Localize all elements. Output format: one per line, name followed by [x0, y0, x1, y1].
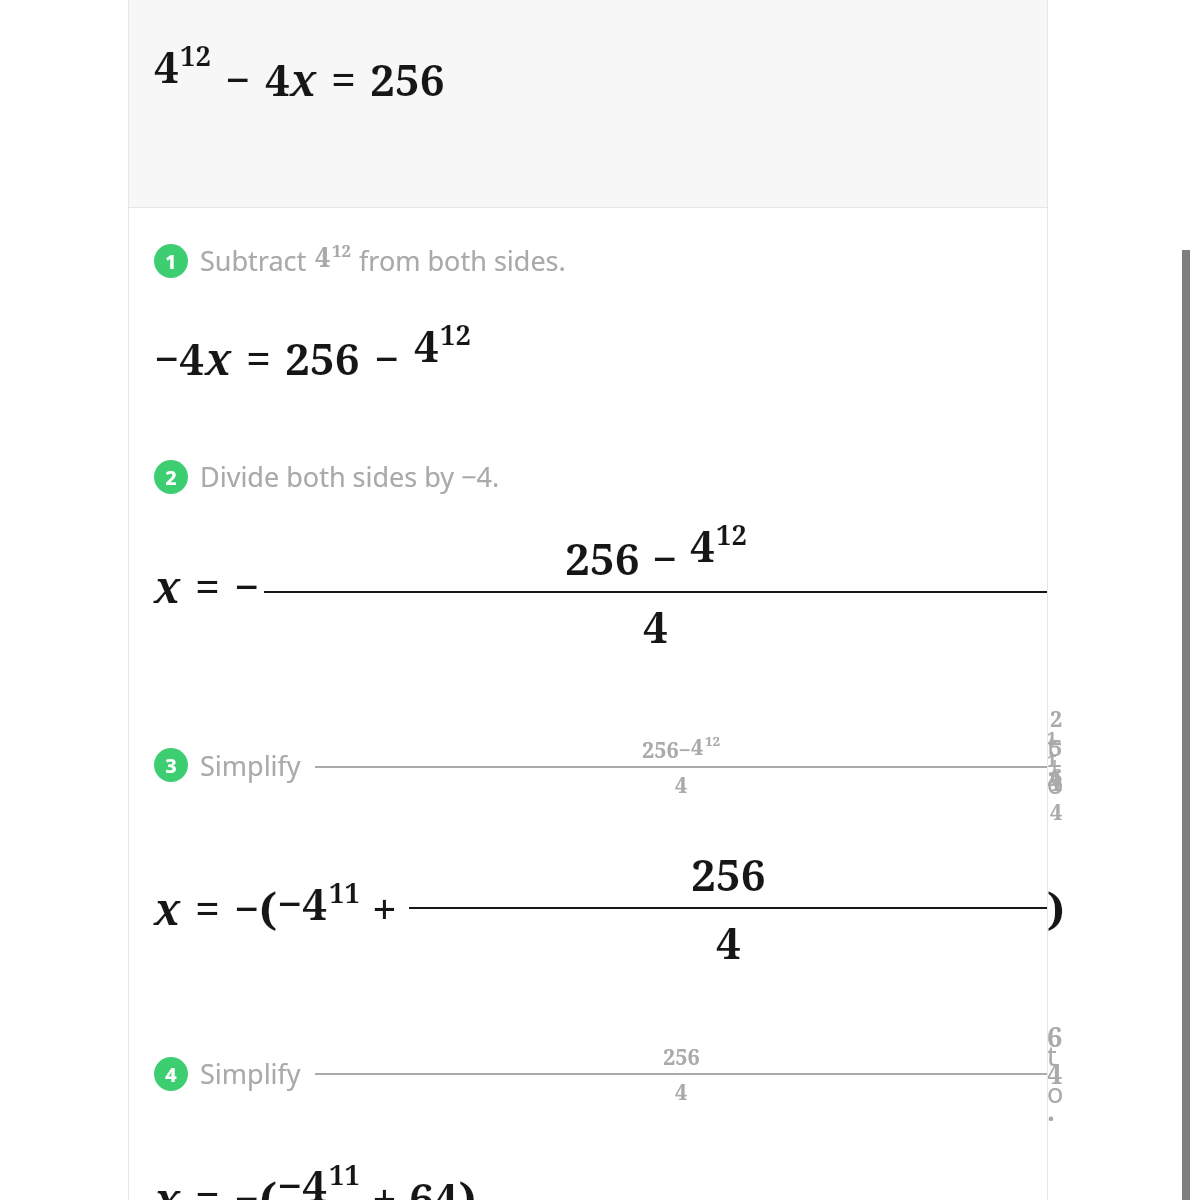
- staticText: x: [205, 328, 232, 388]
- staticText: −: [374, 328, 400, 388]
- staticText: +: [372, 1168, 397, 1200]
- staticText: Simplify: [200, 747, 301, 784]
- staticText: 4: [414, 315, 439, 375]
- staticText: 4: [265, 49, 290, 109]
- staticText: −(: [234, 878, 277, 938]
- staticText: 2: [165, 464, 177, 491]
- button[interactable]: 4: [128, 1018, 1047, 1129]
- staticText: −(: [234, 1168, 277, 1200]
- staticText: 256: [691, 844, 766, 904]
- staticText: −: [234, 556, 260, 616]
- staticText: −: [225, 49, 251, 109]
- staticText: x: [154, 878, 181, 938]
- staticText: 4: [675, 770, 688, 799]
- staticText: −: [652, 528, 678, 588]
- staticText: from both sides.: [359, 242, 566, 279]
- staticText: 11: [329, 1156, 360, 1193]
- staticText: 12: [180, 37, 211, 74]
- staticText: =: [331, 49, 356, 109]
- staticText: x: [154, 556, 181, 616]
- staticText: 4: [643, 596, 668, 656]
- staticText: =: [195, 878, 220, 938]
- staticText: 4: [691, 732, 704, 761]
- button[interactable]: 3: [128, 704, 1047, 826]
- staticText: Divide both sides by −4.: [200, 458, 500, 495]
- staticText: 256: [285, 328, 360, 388]
- staticText: 3: [165, 752, 177, 779]
- button[interactable]: 4: [128, 0, 1047, 207]
- staticText: −4: [277, 1155, 328, 1200]
- staticText: 12: [440, 316, 471, 353]
- staticText: 4: [690, 515, 715, 575]
- staticText: 11: [329, 874, 360, 911]
- staticText: 256: [565, 528, 640, 588]
- staticText: −4: [277, 873, 328, 933]
- staticText: 4: [154, 36, 179, 96]
- staticText: 4: [315, 238, 331, 275]
- staticText: Simplify: [200, 1055, 301, 1092]
- staticText: 4: [675, 1077, 688, 1106]
- staticText: Subtract: [200, 242, 307, 279]
- staticText: 12: [716, 516, 747, 553]
- staticText: x: [154, 1168, 181, 1200]
- staticText: =: [246, 328, 271, 388]
- staticText: 4: [165, 1061, 177, 1088]
- staticText: 1: [165, 248, 177, 275]
- staticText: 256−: [642, 735, 691, 764]
- staticText: =: [195, 556, 220, 616]
- staticText: x: [290, 49, 317, 109]
- staticText: 12: [705, 732, 721, 750]
- button[interactable]: 1: [128, 238, 1047, 283]
- staticText: −4: [154, 328, 205, 388]
- staticText: 64): [409, 1168, 477, 1200]
- staticText: 4: [716, 912, 741, 972]
- staticText: 256: [663, 1042, 700, 1071]
- button[interactable]: 2: [128, 458, 1047, 495]
- staticText: 256: [370, 49, 445, 109]
- staticText: =: [195, 1168, 220, 1200]
- staticText: +: [372, 878, 397, 938]
- staticText: 12: [332, 239, 351, 262]
